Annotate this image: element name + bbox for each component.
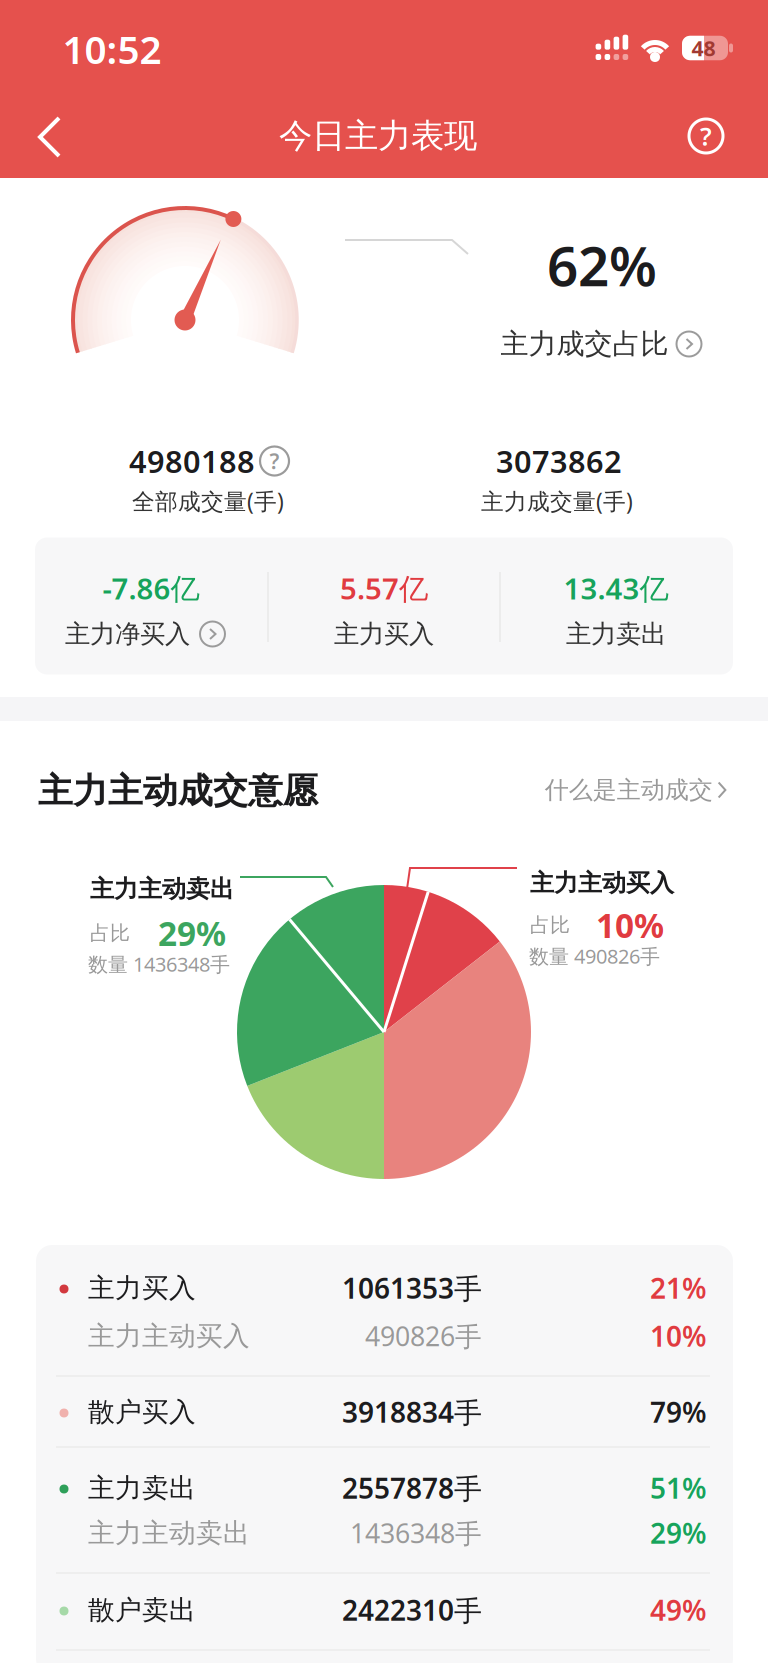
staticText: 主力成交量(手) [481,486,633,516]
staticText: -7.86亿 [102,568,199,607]
staticText: 2422310手 [342,1591,482,1629]
staticText: 2557878手 [342,1469,482,1507]
staticText: 51% [650,1469,707,1507]
staticText: 全部成交量(手) [132,486,284,516]
staticText: 占比 [90,921,130,945]
staticText: 占比 [530,913,570,937]
staticText: 主力买入 [88,1272,196,1304]
staticText: 散户买入 [88,1396,196,1428]
staticText: 10% [596,903,664,947]
staticText: 21% [650,1269,707,1307]
staticText: 10% [650,1317,707,1355]
staticText: 5.57亿 [340,568,428,607]
staticText: 主力主动买入 [88,1320,250,1352]
staticText: 主力买入 [334,618,434,649]
staticText: ? [269,447,279,475]
button[interactable]: Back [32,115,68,159]
button[interactable]: Info [260,446,289,475]
staticText: 48 [691,34,715,62]
staticText: 主力主动卖出 [90,874,234,904]
staticText: 79% [650,1393,707,1431]
button[interactable]: 什么是主动成交 [545,775,727,805]
button[interactable]: Help [689,119,723,153]
staticText: 490826手 [365,1318,482,1354]
button[interactable]: 主力净买入 [65,618,225,649]
staticText: 数量 490826手 [529,943,660,969]
staticText: 主力卖出 [88,1472,196,1504]
staticText: 主力主动卖出 [88,1517,250,1549]
staticText: 主力成交占比 [500,327,668,361]
staticText: 主力主动买入 [530,868,674,898]
staticText: 1061353手 [342,1269,482,1307]
staticText: ? [700,119,712,153]
staticText: 13.43亿 [563,568,668,607]
staticText: 主力主动成交意愿 [38,770,318,812]
staticText: 1436348手 [350,1515,482,1551]
staticText: 3073862 [496,441,622,481]
staticText: 主力净买入 [65,618,190,649]
staticText: 散户卖出 [88,1594,196,1626]
staticText: 3918834手 [342,1393,482,1431]
staticText: 29% [158,911,226,955]
staticText: 数量 1436348手 [88,951,230,977]
staticText: 主力卖出 [566,618,666,649]
staticText: 4980188 [129,441,255,481]
button[interactable]: 主力成交占比 [500,327,701,361]
staticText: 10:52 [62,23,161,75]
staticText: 62% [547,229,657,301]
staticText: 今日主力表现 [279,115,477,156]
staticText: 什么是主动成交 [545,775,713,805]
staticText: 49% [650,1591,707,1629]
staticText: 29% [650,1514,707,1552]
